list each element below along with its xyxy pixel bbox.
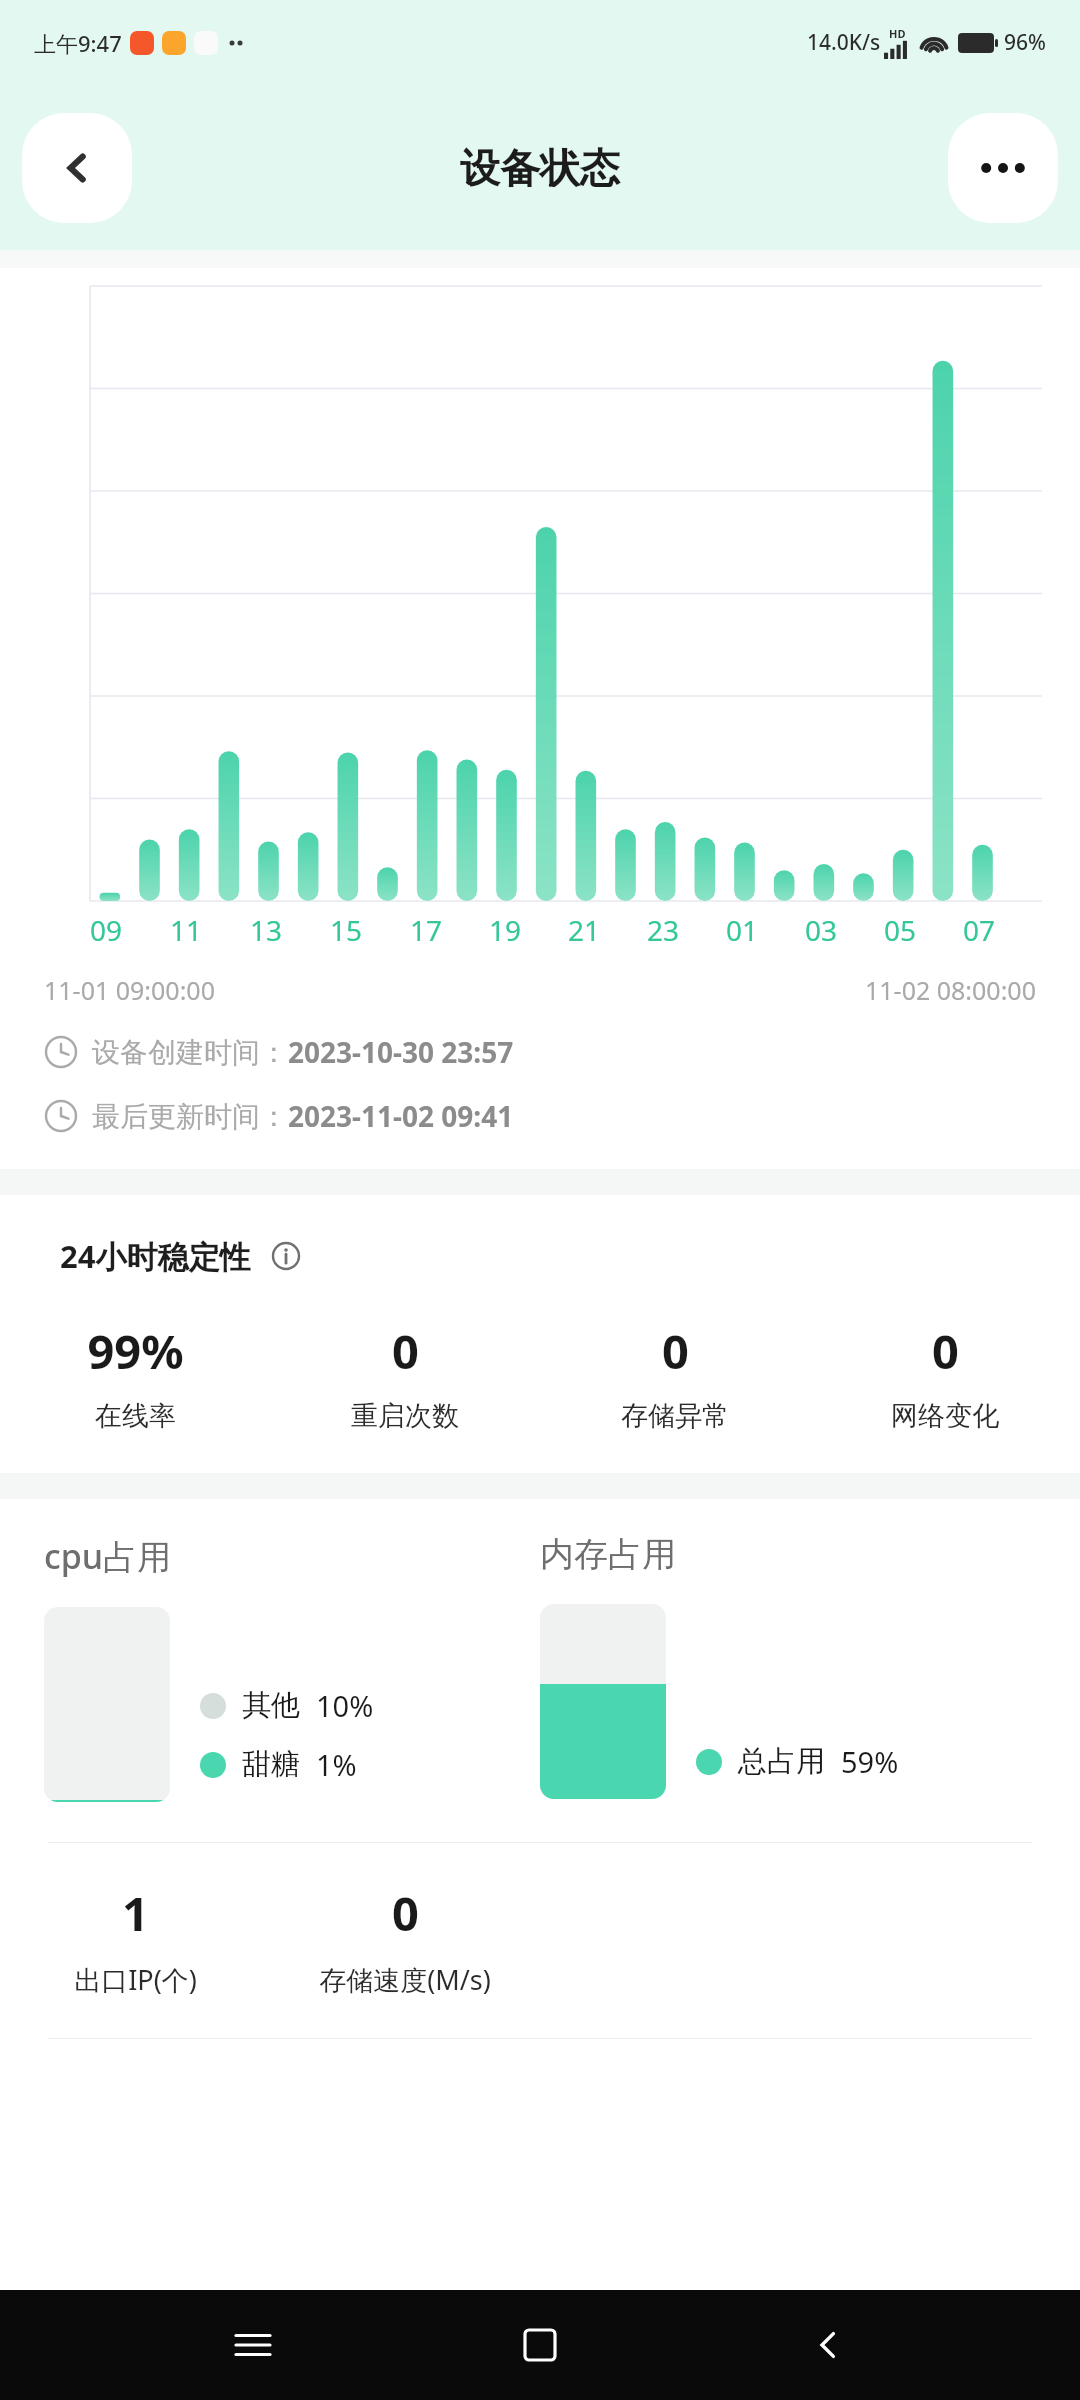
- staticText: HD: [889, 26, 906, 41]
- button[interactable]: 更多: [948, 113, 1058, 223]
- button[interactable]: 0: [540, 1319, 810, 1433]
- button[interactable]: 主页: [505, 2310, 575, 2380]
- button[interactable]: 说明: [271, 1241, 301, 1271]
- staticText: 24小时稳定性: [60, 1235, 251, 1277]
- staticText: 03: [805, 911, 838, 949]
- button[interactable]: 返回: [793, 2310, 863, 2380]
- staticText: 13: [250, 911, 283, 949]
- staticText: 96%: [1004, 28, 1046, 57]
- button[interactable]: 0: [270, 1881, 540, 1998]
- staticText: 出口IP(个): [74, 1961, 197, 1998]
- button[interactable]: 最近任务: [218, 2310, 288, 2380]
- staticText: 1: [122, 1881, 149, 1945]
- staticText: 09: [90, 911, 123, 949]
- staticText: 上午9:47: [34, 28, 122, 58]
- staticText: 0: [662, 1319, 689, 1383]
- staticText: 11: [170, 911, 203, 949]
- button[interactable]: 0: [810, 1319, 1080, 1433]
- staticText: 网络变化: [891, 1399, 999, 1433]
- staticText: 17: [410, 911, 443, 949]
- staticText: 存储异常: [621, 1399, 729, 1433]
- staticText: 内存占用: [540, 1533, 676, 1576]
- staticText: 59%: [841, 1742, 899, 1781]
- staticText: 2023-11-02 09:41: [288, 1097, 514, 1135]
- staticText: 最后更新时间：: [92, 1099, 288, 1134]
- staticText: 99%: [87, 1319, 184, 1383]
- staticText: 设备状态: [460, 143, 620, 193]
- button[interactable]: 返回: [22, 113, 132, 223]
- staticText: 05: [884, 911, 917, 949]
- staticText: 甜糖: [242, 1746, 300, 1783]
- staticText: 2023-10-30 23:57: [288, 1033, 514, 1071]
- button[interactable]: 0: [270, 1319, 540, 1433]
- staticText: 21: [568, 911, 601, 949]
- staticText: 设备创建时间：: [92, 1035, 288, 1070]
- staticText: 1%: [316, 1745, 357, 1784]
- staticText: 01: [726, 911, 759, 949]
- staticText: 10%: [316, 1686, 374, 1725]
- staticText: 23: [647, 911, 680, 949]
- staticText: 0: [932, 1319, 959, 1383]
- staticText: cpu占用: [44, 1533, 172, 1579]
- staticText: 其他: [242, 1687, 300, 1724]
- staticText: 19: [489, 911, 522, 949]
- staticText: 0: [392, 1319, 419, 1383]
- staticText: 11-02 08:00:00: [865, 973, 1036, 1007]
- staticText: 14.0K/s: [807, 28, 881, 57]
- button[interactable]: 1: [0, 1881, 270, 1998]
- staticText: 0: [392, 1881, 419, 1945]
- staticText: 07: [963, 911, 996, 949]
- staticText: 总占用: [738, 1743, 825, 1780]
- staticText: 存储速度(M/s): [319, 1961, 491, 1998]
- staticText: 15: [330, 911, 363, 949]
- staticText: 重启次数: [351, 1399, 459, 1433]
- button[interactable]: 99%: [0, 1319, 270, 1433]
- staticText: 11-01 09:00:00: [44, 973, 215, 1007]
- staticText: 在线率: [95, 1399, 176, 1433]
